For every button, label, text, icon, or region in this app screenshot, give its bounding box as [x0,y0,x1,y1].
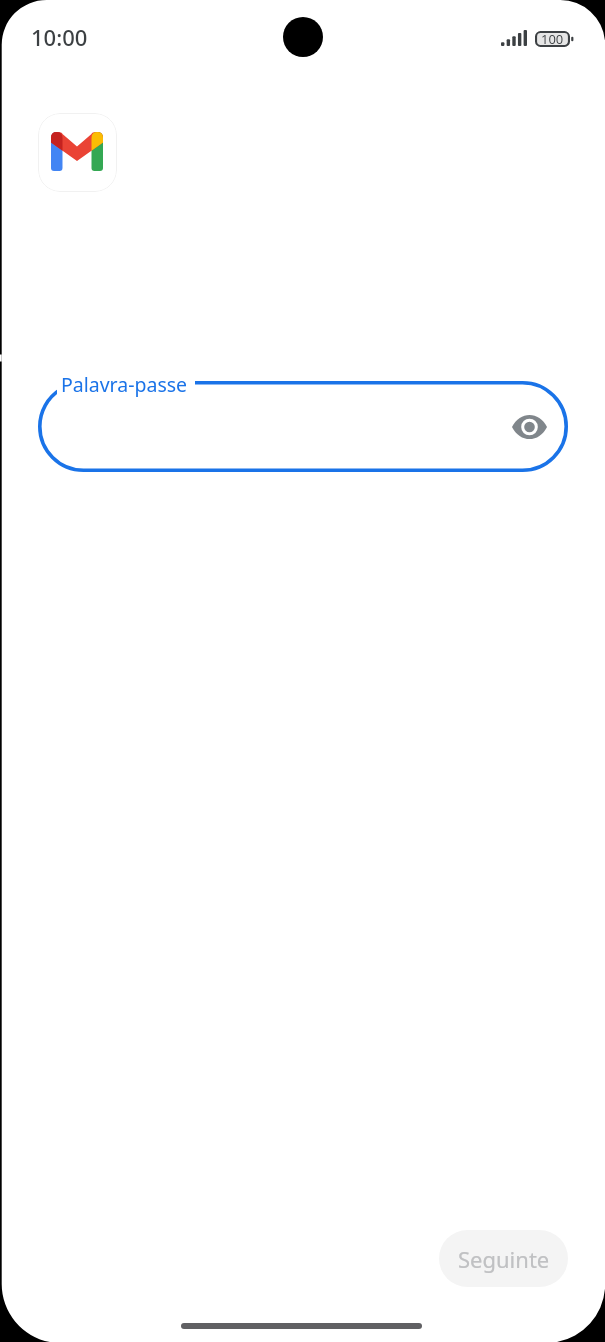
button[interactable]: Palavra-passe [38,381,568,472]
staticText: 10:00 [31,22,88,52]
staticText: Palavra-passe [61,371,188,398]
staticText: 100 [541,30,564,48]
staticText: Seguinte [458,1244,550,1274]
button[interactable]: Mostrar palavra-passe [506,404,552,450]
button[interactable]: Seguinte [439,1230,568,1287]
